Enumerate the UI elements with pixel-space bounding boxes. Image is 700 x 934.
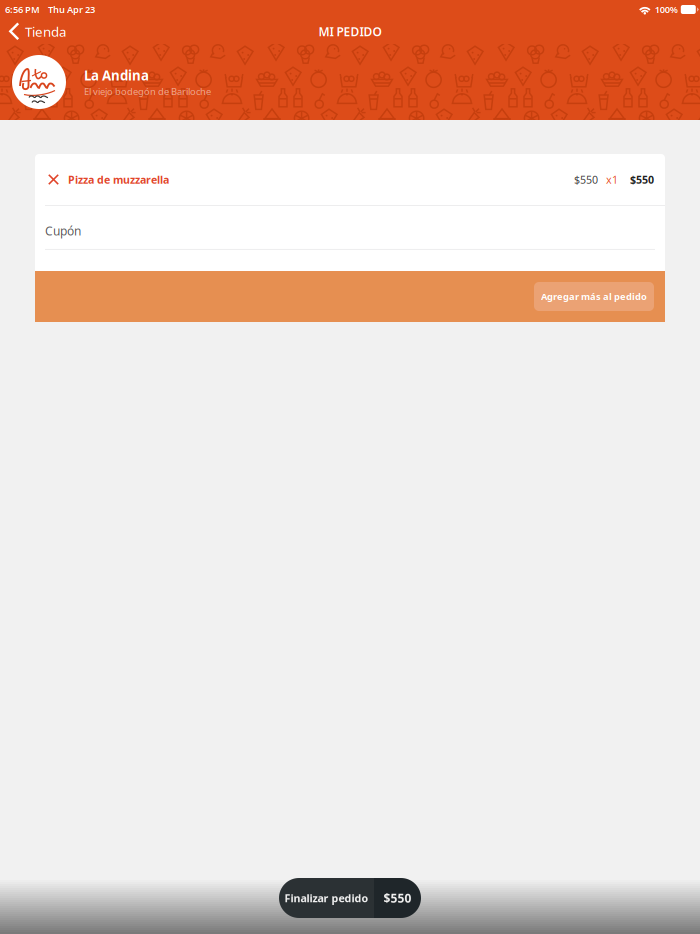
staticText: $550 <box>574 172 598 187</box>
staticText: $550 <box>630 172 654 187</box>
staticText: La Andina <box>84 66 149 84</box>
staticText: x1 <box>606 172 618 187</box>
staticText: $550 <box>383 890 411 906</box>
button[interactable]: Quitar Pizza de muzzarella <box>35 154 68 205</box>
staticText: 100% <box>655 3 678 16</box>
staticText: Tienda <box>25 23 66 40</box>
staticText: El viejo bodegón de Bariloche <box>84 85 211 98</box>
button[interactable]: Agregar más al pedido <box>534 282 654 311</box>
staticText: Finalizar pedido <box>284 891 368 905</box>
staticText: Cupón <box>45 223 81 239</box>
button[interactable]: Finalizar pedido <box>279 878 421 918</box>
staticText: Agregar más al pedido <box>541 290 647 303</box>
staticText: 6:56 PM <box>5 3 40 16</box>
staticText: Thu Apr 23 <box>48 3 95 16</box>
button[interactable]: Tienda <box>0 19 76 44</box>
staticText: MI PEDIDO <box>318 23 381 39</box>
staticText: Pizza de muzzarella <box>68 172 169 187</box>
